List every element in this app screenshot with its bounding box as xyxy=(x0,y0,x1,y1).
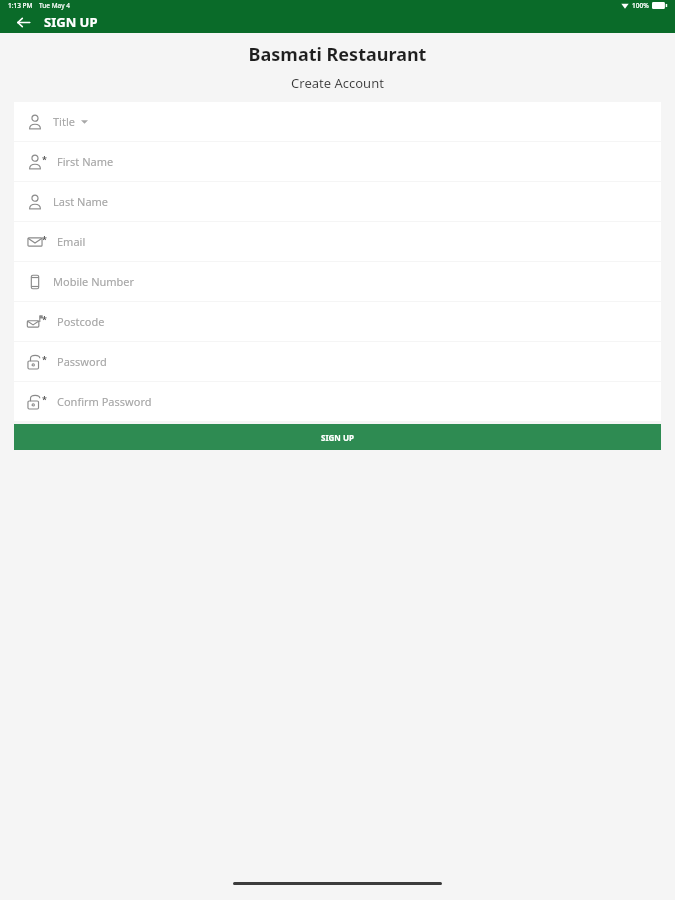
staticText: * xyxy=(42,393,47,405)
staticText: SIGN UP xyxy=(321,432,354,443)
button[interactable]: * xyxy=(14,342,661,381)
staticText: 100% xyxy=(632,1,649,10)
button[interactable]: Title xyxy=(14,102,661,141)
staticText: * xyxy=(42,313,47,325)
staticText: Mobile Number xyxy=(53,274,135,289)
button[interactable]: Last Name xyxy=(14,182,661,221)
staticText: Postcode xyxy=(57,314,105,329)
button[interactable]: Back xyxy=(10,11,36,33)
staticText: Password xyxy=(57,354,107,369)
button[interactable]: Mobile Number xyxy=(14,262,661,301)
staticText: Tue May 4 xyxy=(39,1,70,10)
staticText: 1:13 PM xyxy=(8,1,33,10)
staticText: * xyxy=(42,233,47,245)
staticText: Title xyxy=(53,114,75,129)
button[interactable]: * xyxy=(14,382,661,421)
staticText: Last Name xyxy=(53,194,109,209)
staticText: Basmati Restaurant xyxy=(0,42,675,67)
button[interactable]: * xyxy=(14,142,661,181)
button[interactable]: * xyxy=(14,222,661,261)
staticText: * xyxy=(42,153,47,165)
button[interactable]: SIGN UP xyxy=(14,424,661,450)
staticText: Confirm Password xyxy=(57,394,152,409)
staticText: SIGN UP xyxy=(44,13,98,31)
staticText: First Name xyxy=(57,154,114,169)
staticText: Email xyxy=(57,234,86,249)
staticText: Create Account xyxy=(0,74,675,92)
button[interactable]: * xyxy=(14,302,661,341)
staticText: * xyxy=(42,353,47,365)
